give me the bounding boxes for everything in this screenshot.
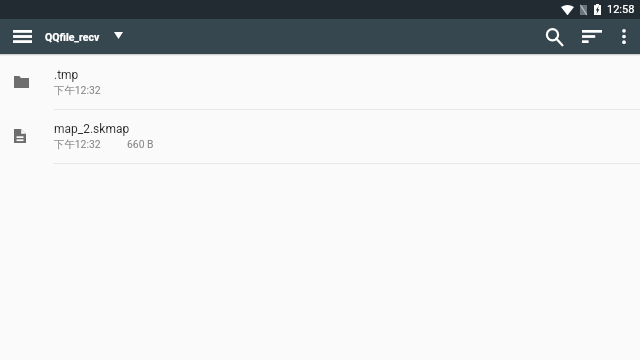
button[interactable]: Search [532,19,576,54]
staticText: 660 B [127,138,154,150]
staticText: .tmp [54,68,79,82]
button[interactable]: More options [607,19,640,54]
staticText: 12:58 [607,3,635,16]
staticText: map_2.skmap [54,122,130,136]
button[interactable]: Sort [576,19,607,54]
button[interactable]: map_2.skmap [0,110,640,164]
staticText: 下午12:32 [54,138,101,151]
staticText: QQfile_recv [45,31,100,43]
button[interactable]: Open navigation drawer [0,19,42,54]
staticText: 下午12:32 [54,84,101,97]
button[interactable]: .tmp [0,56,640,110]
button[interactable]: QQfile_recv [42,19,123,54]
